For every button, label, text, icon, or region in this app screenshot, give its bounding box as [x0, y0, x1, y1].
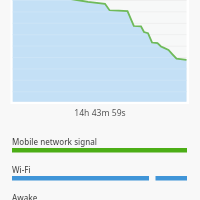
button[interactable]: Wi-Fi	[0, 164, 200, 192]
button[interactable]: Battery level history chart	[0, 0, 200, 120]
staticText: Mobile network signal	[12, 136, 97, 147]
staticText: Wi-Fi	[12, 164, 31, 175]
staticText: 14h 43m 59s	[0, 107, 200, 119]
staticText: Awake	[12, 192, 38, 200]
button[interactable]: Awake	[0, 192, 200, 200]
button[interactable]: Mobile network signal	[0, 136, 200, 164]
